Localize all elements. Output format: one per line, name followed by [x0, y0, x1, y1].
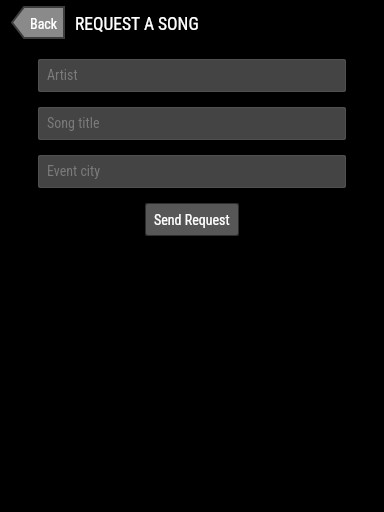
staticText: Song title — [47, 115, 100, 131]
button[interactable]: Artist — [39, 60, 345, 91]
staticText: Event city — [47, 163, 101, 179]
button[interactable]: Send Request — [146, 204, 238, 235]
staticText: Send Request — [154, 212, 230, 228]
staticText: Artist — [47, 67, 78, 83]
staticText: REQUEST A SONG — [75, 14, 199, 35]
button[interactable]: Back — [11, 6, 65, 39]
staticText: Back — [30, 16, 58, 32]
button[interactable]: Event city — [39, 156, 345, 187]
button[interactable]: Song title — [39, 108, 345, 139]
